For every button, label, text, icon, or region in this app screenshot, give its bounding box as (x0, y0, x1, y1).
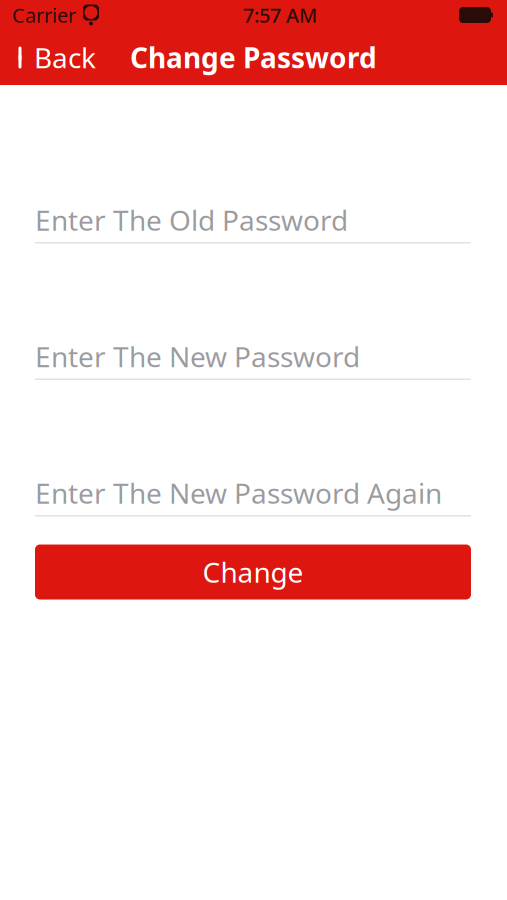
staticText: Back (34, 39, 96, 76)
staticText: Enter The New Password Again (35, 474, 442, 512)
button[interactable]: Change (35, 544, 471, 599)
staticText: Enter The Old Password (35, 201, 348, 239)
staticText: Change (202, 553, 303, 591)
staticText: 7:57 AM (243, 2, 317, 28)
staticText: Change Password (130, 39, 377, 76)
staticText: Enter The New Password (35, 338, 360, 375)
staticText: Carrier (12, 2, 76, 28)
button[interactable]: Back (0, 30, 106, 85)
